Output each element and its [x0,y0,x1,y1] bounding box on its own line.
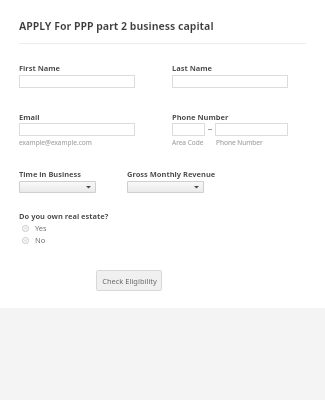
button[interactable]: Check Eligibility [96,270,162,291]
staticText: Check Eligibility [102,276,157,286]
staticText: Area Code [172,138,204,147]
staticText: Phone Number [172,112,229,122]
staticText: Email [19,112,40,122]
staticText: Yes [35,223,47,233]
staticText: Last Name [172,63,213,73]
staticText: First Name [19,63,61,73]
button[interactable]: Select option [127,181,204,193]
button[interactable] [19,75,135,88]
button[interactable]: No [19,234,46,246]
button[interactable] [172,123,205,136]
button[interactable] [172,75,288,88]
staticText: example@example.com [19,138,92,147]
button[interactable] [19,123,135,136]
staticText: Time in Business [19,169,82,179]
staticText: No [35,235,46,245]
button[interactable]: Yes [19,222,47,234]
button[interactable] [215,123,288,136]
staticText: Do you own real estate? [19,211,109,221]
staticText: Gross Monthly Revenue [127,169,216,179]
staticText: APPLY For PPP part 2 business capital [19,19,214,33]
staticText: Phone Number [216,138,263,147]
button[interactable]: Select option [19,181,96,193]
